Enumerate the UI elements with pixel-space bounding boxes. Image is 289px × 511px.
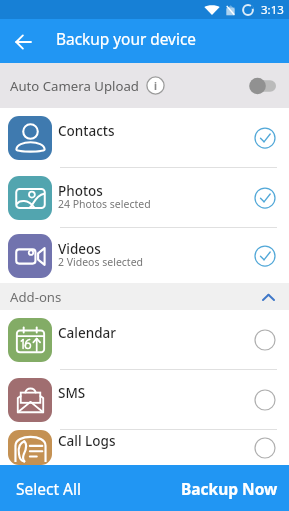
button[interactable]: Videos: [0, 228, 289, 283]
staticText: 24 Photos selected: [58, 197, 151, 211]
staticText: Calendar: [58, 324, 116, 342]
staticText: Auto Camera Upload: [10, 77, 139, 95]
staticText: i: [154, 79, 157, 93]
staticText: Photos: [58, 182, 103, 200]
staticText: Videos: [58, 240, 101, 258]
staticText: Backup your device: [56, 29, 196, 50]
staticText: 3:13: [261, 2, 284, 18]
staticText: 2 Videos selected: [58, 255, 144, 269]
button[interactable]: Back: [0, 19, 46, 63]
button[interactable]: Collapse Add-ons: [257, 286, 279, 308]
staticText: Backup Now: [181, 478, 278, 499]
staticText: Contacts: [58, 122, 115, 140]
button[interactable]: Auto Camera Upload: [0, 63, 289, 108]
staticText: SMS: [58, 384, 86, 402]
button[interactable]: Auto camera upload toggle: [250, 74, 276, 98]
button[interactable]: SMS: [0, 370, 289, 429]
button[interactable]: Add-ons: [0, 283, 289, 310]
button[interactable]: Contacts: [0, 108, 289, 167]
staticText: Call Logs: [58, 432, 116, 450]
staticText: Select All: [16, 478, 81, 499]
button[interactable]: Call Logs: [0, 430, 289, 465]
button[interactable]: Select All: [0, 465, 144, 511]
staticText: Add-ons: [10, 288, 62, 306]
button[interactable]: Backup Now: [144, 465, 289, 511]
button[interactable]: Calendar: [0, 310, 289, 369]
button[interactable]: Photos: [0, 168, 289, 227]
